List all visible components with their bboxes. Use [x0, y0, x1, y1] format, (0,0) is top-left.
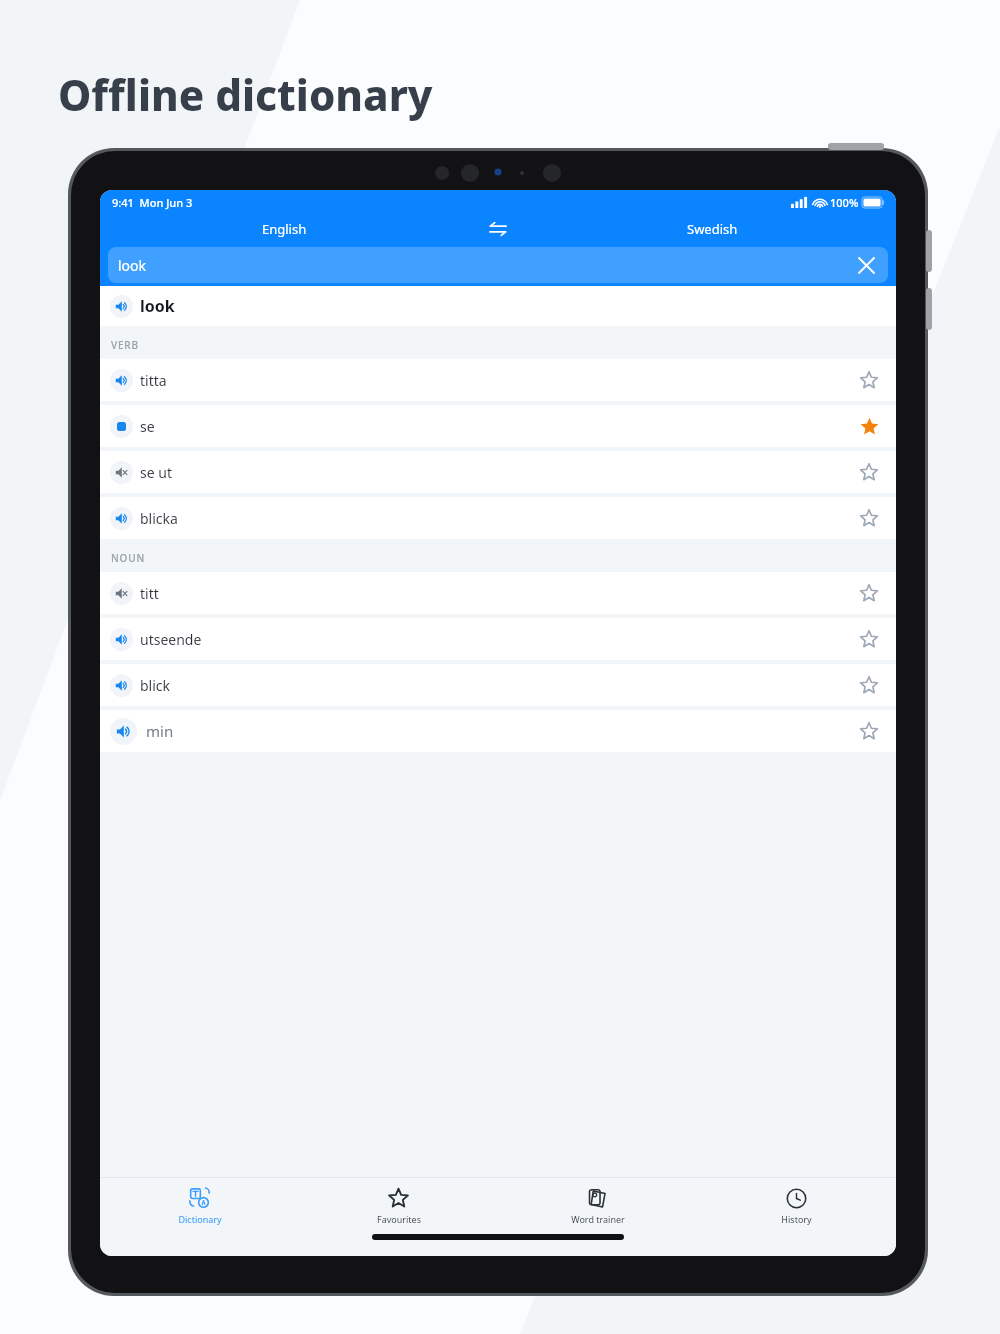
button[interactable]: Play pronunciation	[100, 451, 896, 493]
button[interactable]: Clear search	[854, 253, 878, 277]
button[interactable]: Play pronunciation	[110, 628, 133, 651]
staticText: look	[140, 295, 175, 317]
staticText: Favourites	[377, 1213, 421, 1225]
staticText: 100%	[830, 195, 859, 210]
button[interactable]: Word trainer	[498, 1178, 697, 1234]
button[interactable]: History	[697, 1178, 896, 1234]
button[interactable]: Play pronunciation	[110, 582, 133, 605]
staticText: blick	[140, 676, 171, 695]
button[interactable]: English	[100, 214, 468, 244]
button[interactable]: Play pronunciation	[110, 369, 133, 392]
staticText: English	[262, 220, 307, 238]
staticText: 9:41 Mon Jun 3	[112, 195, 193, 210]
button[interactable]: Add to favourites	[854, 578, 884, 608]
button[interactable]: Play pronunciation	[110, 461, 133, 484]
staticText: Swedish	[687, 220, 738, 238]
button[interactable]: Swedish	[528, 214, 896, 244]
staticText: se	[140, 417, 155, 436]
staticText: utseende	[140, 630, 202, 649]
button[interactable]: Play pronunciation	[100, 286, 896, 326]
staticText: Offline dictionary	[58, 66, 433, 123]
staticText: look	[118, 256, 147, 275]
button[interactable]: Stop audio	[100, 405, 896, 447]
button[interactable]: Play pronunciation	[100, 664, 896, 706]
button[interactable]: look	[108, 247, 888, 283]
button[interactable]: Play pronunciation	[110, 507, 133, 530]
staticText: VERB	[111, 338, 139, 352]
button[interactable]: Dictionary	[100, 1178, 299, 1234]
staticText: blicka	[140, 509, 178, 528]
button[interactable]: Add to favourites	[854, 716, 884, 746]
staticText: titt	[140, 584, 159, 603]
button[interactable]: Play pronunciation	[100, 710, 896, 752]
button[interactable]: Stop audio	[110, 415, 133, 438]
staticText: Dictionary	[178, 1213, 222, 1225]
button[interactable]: Favourites	[299, 1178, 498, 1234]
button[interactable]: Play pronunciation	[110, 295, 133, 318]
staticText: se ut	[140, 463, 172, 482]
staticText: NOUN	[111, 551, 145, 565]
button[interactable]: Add to favourites	[854, 457, 884, 487]
button[interactable]: Play pronunciation	[110, 718, 137, 745]
button[interactable]: Add to favourites	[854, 365, 884, 395]
button[interactable]: Remove from favourites	[854, 411, 884, 441]
button[interactable]: Play pronunciation	[100, 359, 896, 401]
button[interactable]: Play pronunciation	[100, 497, 896, 539]
button[interactable]: Play pronunciation	[100, 618, 896, 660]
staticText: min	[146, 721, 174, 741]
staticText: titta	[140, 371, 167, 390]
button[interactable]: Add to favourites	[854, 503, 884, 533]
staticText: History	[781, 1213, 812, 1225]
button[interactable]: Swap languages	[468, 214, 528, 244]
button[interactable]: Add to favourites	[854, 670, 884, 700]
button[interactable]: Play pronunciation	[100, 572, 896, 614]
button[interactable]: Add to favourites	[854, 624, 884, 654]
button[interactable]: Play pronunciation	[110, 674, 133, 697]
staticText: Word trainer	[571, 1213, 625, 1225]
